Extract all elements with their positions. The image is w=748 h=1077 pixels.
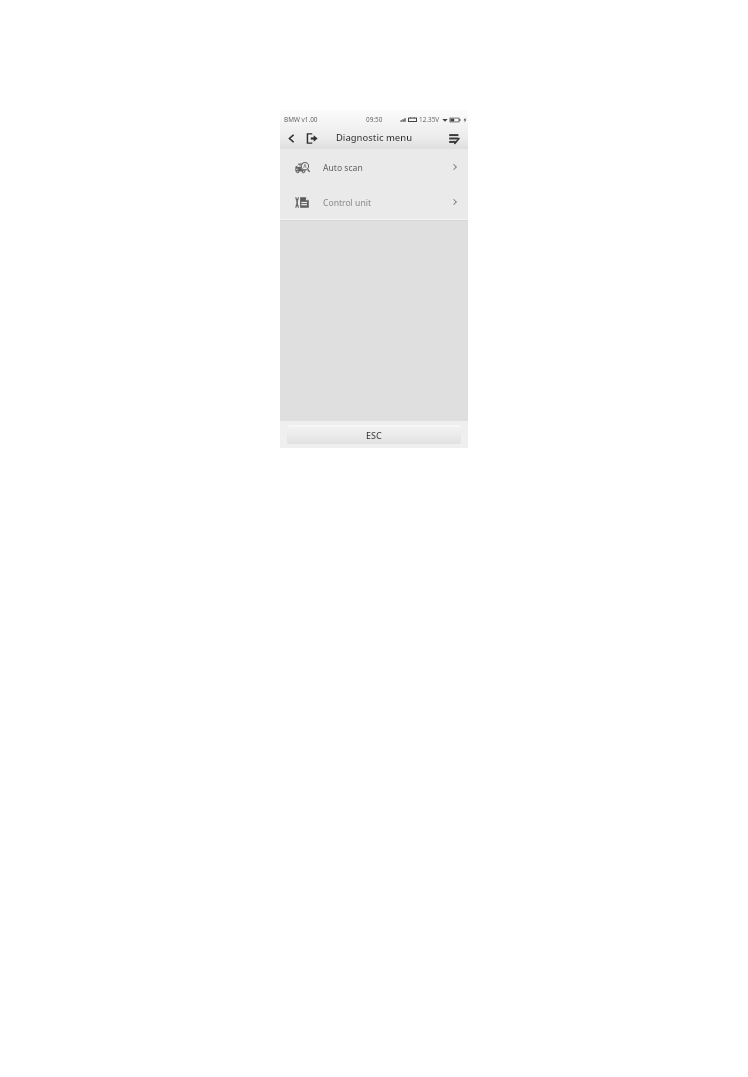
button[interactable]: Back [284, 131, 298, 145]
staticText: 09:50 [366, 115, 383, 124]
button[interactable]: Exit [305, 131, 319, 145]
button[interactable]: Control unit [280, 184, 468, 219]
staticText: 12.35V [419, 115, 440, 124]
button[interactable]: Auto scan [280, 149, 468, 184]
button[interactable]: ESC [287, 425, 461, 444]
staticText: Diagnostic menu [336, 131, 413, 144]
staticText: BMW v1.00 [284, 115, 318, 124]
staticText: ESC [366, 429, 382, 441]
button[interactable]: Menu [447, 131, 461, 145]
staticText: Control unit [323, 197, 372, 209]
staticText: Auto scan [323, 162, 363, 174]
